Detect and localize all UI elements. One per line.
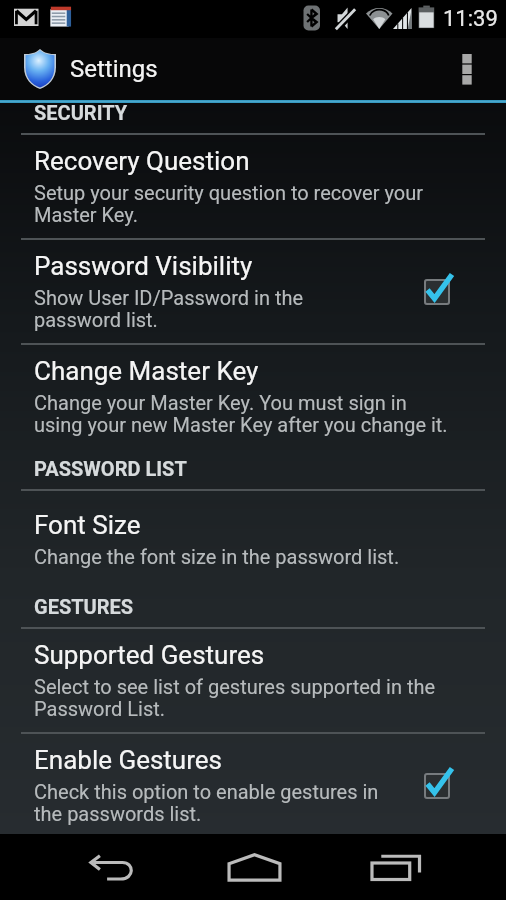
button[interactable]: Toggle checkbox [424, 244, 506, 339]
button[interactable]: Font Size [0, 491, 506, 586]
staticText: GESTURES [34, 595, 134, 618]
staticText: Select to see list of gestures supported… [34, 675, 436, 721]
staticText: Change the font size in the password lis… [34, 545, 400, 568]
button[interactable]: Recent apps [339, 834, 452, 900]
staticText: PASSWORD LIST [34, 457, 187, 480]
staticText: Font Size [34, 510, 141, 540]
staticText: 11:39 [443, 6, 498, 32]
staticText: SECURITY [34, 103, 128, 124]
staticText: Change Master Key [34, 356, 259, 386]
staticText: Enable Gestures [34, 745, 222, 775]
staticText: Setup your security question to recover … [34, 181, 423, 227]
staticText: Show User ID/Password in the password li… [34, 286, 304, 332]
button[interactable]: Recovery Question [0, 135, 506, 238]
staticText: Password Visibility [34, 251, 253, 281]
button[interactable]: Enable Gestures [0, 734, 506, 834]
staticText: Check this option to enable gestures in … [34, 780, 379, 826]
staticText: Recovery Question [34, 146, 250, 176]
staticText: Settings [70, 55, 158, 83]
staticText: Change your Master Key. You must sign in… [34, 391, 448, 437]
button[interactable]: Supported Gestures [0, 629, 506, 732]
button[interactable]: Toggle checkbox [424, 738, 506, 833]
button[interactable]: Home [197, 834, 311, 900]
staticText: Supported Gestures [34, 640, 265, 670]
button[interactable]: Change Master Key [0, 345, 506, 448]
button[interactable]: Back [55, 834, 170, 900]
button[interactable]: Password Visibility [0, 240, 506, 343]
button[interactable]: More options [428, 38, 506, 100]
